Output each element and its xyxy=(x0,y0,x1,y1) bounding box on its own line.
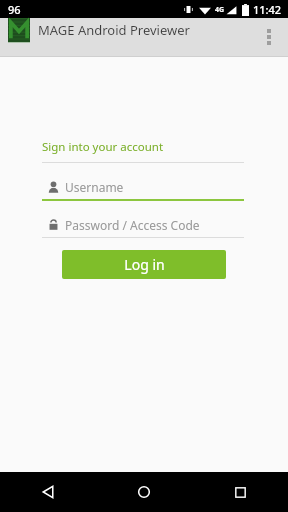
staticText: Sign into your account xyxy=(42,139,164,155)
button[interactable]: Back xyxy=(0,472,96,512)
staticText: Log in xyxy=(124,255,165,274)
staticText: MAGE Android Previewer xyxy=(38,21,190,39)
button[interactable]: Home xyxy=(96,472,192,512)
staticText: 11:42 xyxy=(253,2,282,17)
staticText: Password / Access Code xyxy=(65,217,200,233)
button[interactable]: More options xyxy=(250,18,288,56)
staticText: 4G xyxy=(215,5,225,15)
button[interactable]: Log in xyxy=(62,250,226,279)
button[interactable]: Username xyxy=(42,177,244,201)
button[interactable]: Password / Access Code xyxy=(42,215,244,238)
staticText: 96 xyxy=(8,2,21,17)
staticText: Username xyxy=(65,179,124,195)
button[interactable]: Recent apps xyxy=(192,472,288,512)
